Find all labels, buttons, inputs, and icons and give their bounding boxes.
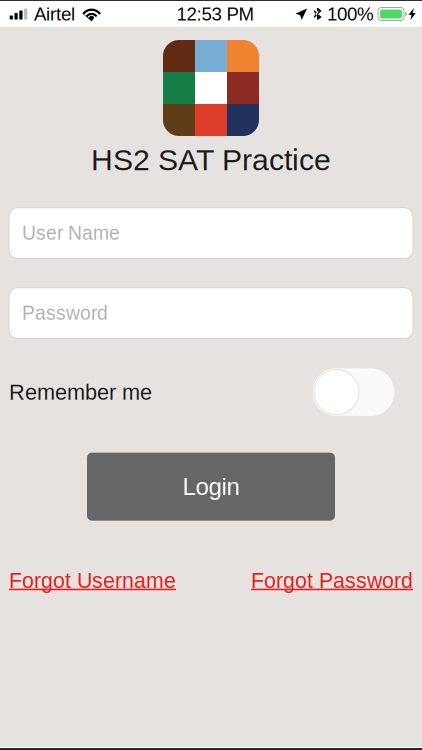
button[interactable]: Login [87, 453, 335, 521]
staticText: Airtel [34, 4, 75, 24]
staticText: 100% [327, 4, 374, 24]
staticText: 12:53 PM [176, 4, 254, 24]
staticText: Remember me [9, 380, 152, 404]
staticText: Forgot Username [9, 569, 176, 592]
staticText: Password [22, 302, 108, 324]
staticText: Login [182, 473, 239, 500]
button[interactable]: Forgot Password [251, 569, 413, 592]
staticText: User Name [22, 222, 120, 244]
staticText: HS2 SAT Practice [91, 143, 331, 177]
button[interactable]: Forgot Username [9, 569, 176, 592]
staticText: Forgot Password [251, 569, 413, 592]
